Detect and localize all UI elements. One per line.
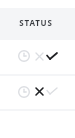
button[interactable]: Accept (45, 49, 58, 62)
button[interactable]: Accept (45, 84, 58, 97)
button[interactable]: Decline (33, 85, 46, 98)
button[interactable]: Decline (0, 76, 75, 109)
staticText: STATUS (19, 17, 53, 28)
button[interactable]: Decline (0, 40, 75, 74)
button[interactable]: Decline (33, 50, 46, 63)
